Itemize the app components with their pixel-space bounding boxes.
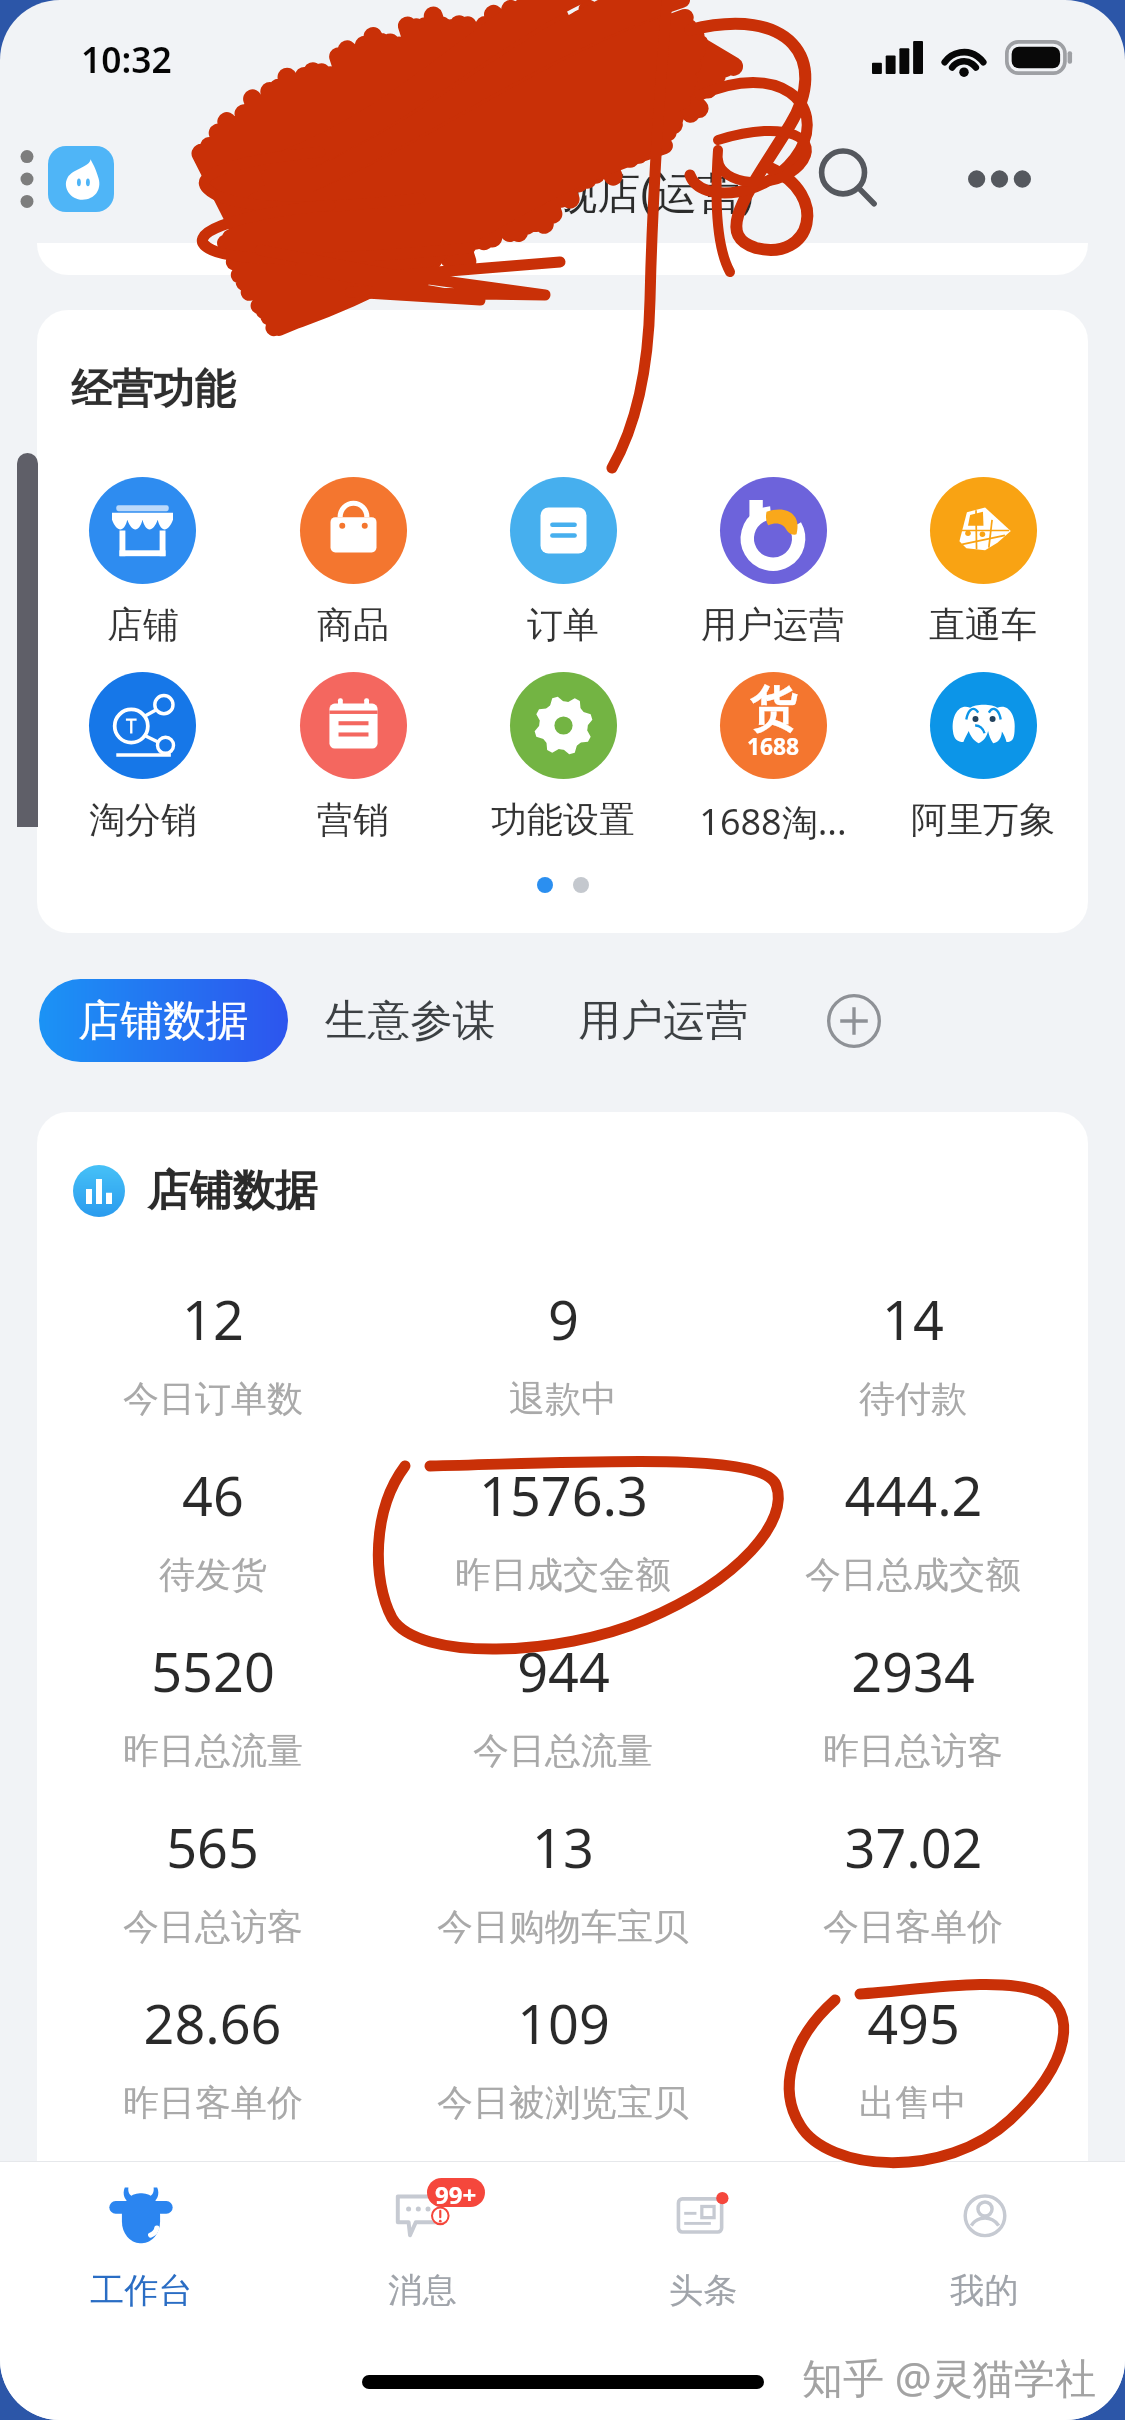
staticText: 店铺数据 — [147, 1164, 318, 1218]
staticText: 2934 — [851, 1634, 975, 1708]
staticText: 我的 — [950, 2269, 1019, 2312]
button[interactable]: 5520 — [37, 1615, 388, 1791]
staticText: 退款中 — [509, 1376, 617, 1421]
button[interactable]: 用户运营 — [578, 979, 749, 1062]
staticText: 5520 — [151, 1634, 275, 1708]
staticText: 待付款 — [859, 1376, 967, 1421]
staticText: 今日购物车宝贝 — [437, 1904, 689, 1949]
staticText: 13 — [532, 1810, 594, 1884]
button[interactable]: 13 — [388, 1791, 738, 1967]
staticText: 知乎 @灵猫学社 — [802, 2349, 1097, 2405]
staticText: 28.66 — [143, 1986, 282, 2060]
button[interactable]: 功能设置 — [458, 672, 668, 842]
staticText: 1688淘... — [699, 797, 847, 846]
staticText: 用户运营 — [578, 994, 749, 1048]
button[interactable]: 495 — [738, 1967, 1088, 2143]
staticText: 旗舰店(运营) — [510, 161, 754, 220]
staticText: 待发货 — [159, 1552, 267, 1597]
staticText: 10:32 — [81, 35, 172, 83]
button[interactable]: 店铺 — [37, 477, 248, 647]
staticText: 营销 — [317, 797, 389, 842]
staticText: 109 — [517, 1986, 610, 2060]
staticText: 昨日总访客 — [823, 1728, 1003, 1773]
staticText: 9 — [548, 1282, 579, 1356]
staticText: 565 — [166, 1810, 259, 1884]
button[interactable]: 直通车 — [878, 477, 1088, 647]
button[interactable]: 用户运营 — [668, 477, 878, 647]
staticText: 14 — [882, 1282, 944, 1356]
staticText: 今日总成交额 — [805, 1552, 1021, 1597]
button[interactable]: 944 — [388, 1615, 738, 1791]
staticText: 昨日客单价 — [123, 2080, 303, 2125]
button[interactable]: Qianniu logo — [48, 146, 114, 212]
staticText: 经营功能 — [71, 363, 236, 415]
staticText: 用户运营 — [701, 602, 845, 647]
staticText: 店铺数据 — [78, 994, 249, 1048]
button[interactable]: 货 — [668, 672, 878, 846]
button[interactable]: 14 — [738, 1263, 1088, 1439]
staticText: 生意参谋 — [325, 994, 496, 1048]
button[interactable]: 109 — [388, 1967, 738, 2143]
staticText: 订单 — [527, 602, 599, 647]
staticText: 直通车 — [929, 602, 1037, 647]
staticText: 今日客单价 — [823, 1904, 1003, 1949]
button[interactable]: 99+ — [282, 2162, 563, 2319]
staticText: 店铺 — [107, 602, 179, 647]
staticText: 消息 — [388, 2269, 457, 2312]
staticText: 昨日总流量 — [123, 1728, 303, 1773]
button[interactable]: 我的 — [844, 2162, 1125, 2319]
staticText: 12 — [182, 1282, 244, 1356]
staticText: 37.02 — [844, 1810, 983, 1884]
staticText: 货 — [750, 680, 797, 739]
staticText: 今日总访客 — [123, 1904, 303, 1949]
button[interactable]: 46 — [37, 1439, 388, 1615]
button[interactable]: 头条 — [563, 2162, 844, 2319]
staticText: 99+ — [435, 2178, 477, 2207]
staticText: 1576.3 — [479, 1458, 648, 1532]
button[interactable]: 565 — [37, 1791, 388, 1967]
staticText: 444.2 — [844, 1458, 983, 1532]
button[interactable]: More options — [939, 119, 1059, 239]
staticText: 今日订单数 — [123, 1376, 303, 1421]
staticText: 46 — [182, 1458, 244, 1532]
button[interactable]: 工作台 — [0, 2162, 282, 2319]
other: Drag handle — [18, 146, 36, 212]
staticText: 昨日成交金额 — [455, 1552, 671, 1597]
staticText: 495 — [867, 1986, 960, 2060]
button[interactable]: 37.02 — [738, 1791, 1088, 1967]
button[interactable]: 444.2 — [738, 1439, 1088, 1615]
button[interactable]: 28.66 — [37, 1967, 388, 2143]
staticText: 944 — [517, 1634, 610, 1708]
button[interactable]: 生意参谋 — [325, 979, 496, 1062]
staticText: 工作台 — [90, 2269, 193, 2312]
staticText: 1688 — [747, 731, 800, 762]
button[interactable]: 营销 — [248, 672, 458, 842]
staticText: 淘分销 — [89, 797, 197, 842]
button[interactable]: 2934 — [738, 1615, 1088, 1791]
button[interactable]: 淘分销 — [37, 672, 248, 842]
button[interactable]: 1576.3 — [388, 1439, 738, 1615]
button[interactable]: 9 — [388, 1263, 738, 1439]
staticText: 今日总流量 — [473, 1728, 653, 1773]
staticText: 头条 — [669, 2269, 738, 2312]
staticText: 功能设置 — [491, 797, 635, 842]
button[interactable]: 商品 — [248, 477, 458, 647]
button[interactable]: 12 — [37, 1263, 388, 1439]
staticText: 今日被浏览宝贝 — [437, 2080, 689, 2125]
staticText: 出售中 — [859, 2080, 967, 2125]
staticText: 阿里万象 — [911, 797, 1055, 842]
button[interactable]: 订单 — [458, 477, 668, 647]
button[interactable]: 店铺数据 — [39, 979, 288, 1062]
button[interactable]: Add tab — [803, 979, 905, 1062]
button[interactable]: Search — [789, 119, 909, 239]
button[interactable]: 阿里万象 — [878, 672, 1088, 842]
staticText: 商品 — [317, 602, 389, 647]
